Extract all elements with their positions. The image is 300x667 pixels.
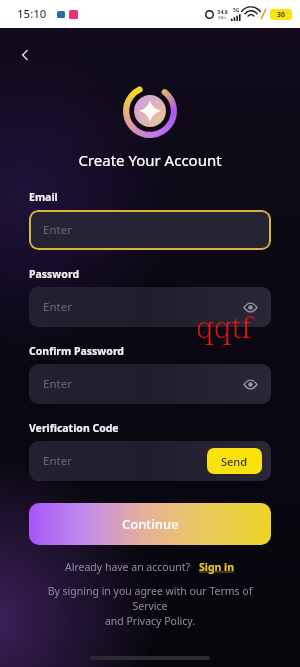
staticText: 30 (277, 10, 286, 20)
staticText: 5G (233, 7, 240, 14)
button[interactable]: Send (207, 448, 262, 474)
staticText: Enter (43, 376, 72, 392)
button[interactable]: Continue (29, 503, 271, 545)
button[interactable]: Enter (29, 364, 271, 404)
staticText: Continue (122, 515, 179, 533)
staticText: Create Your Account (0, 150, 300, 170)
staticText: Enter (43, 453, 72, 469)
staticText: Already have an account? (65, 560, 191, 574)
staticText: 34.8 (217, 8, 228, 15)
button[interactable]: Sign in (199, 560, 235, 574)
button[interactable]: Show password (239, 373, 261, 395)
staticText: qqtf (196, 306, 252, 347)
staticText: By signing in you agree with our Terms o… (29, 584, 271, 628)
button[interactable]: Back (8, 38, 42, 72)
staticText: Verification Code (29, 421, 119, 435)
staticText: Confirm Password (29, 344, 125, 358)
staticText: Sign in (199, 560, 235, 574)
staticText: KB/s (218, 15, 227, 20)
staticText: 15:10 (17, 6, 47, 22)
button[interactable]: Enter (29, 441, 271, 481)
staticText: Email (29, 190, 58, 204)
staticText: Enter (43, 299, 72, 315)
button[interactable]: Enter (29, 287, 271, 327)
button[interactable]: Enter (29, 210, 271, 250)
button[interactable]: Show password (239, 296, 261, 318)
staticText: Enter (43, 222, 72, 238)
staticText: Send (221, 454, 248, 469)
staticText: Password (29, 267, 80, 281)
